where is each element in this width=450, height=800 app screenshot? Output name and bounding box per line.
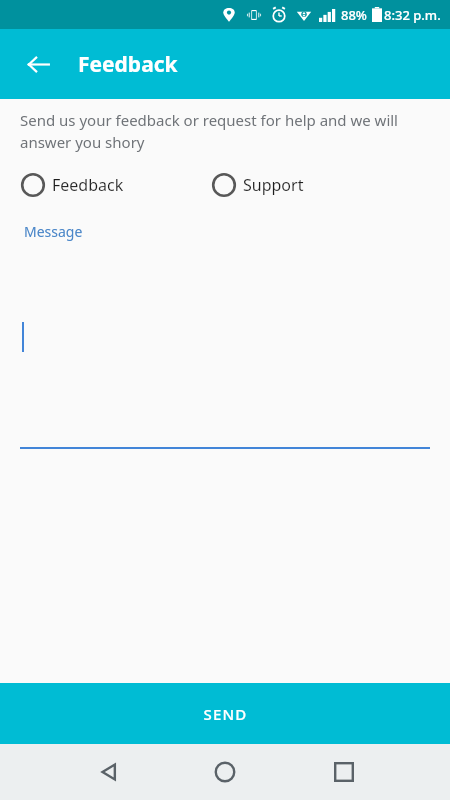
staticText: Support [243,174,304,196]
button[interactable]: SEND [0,683,450,744]
staticText: Send us your feedback or request for hel… [20,110,432,153]
button[interactable]: Feedback [21,169,124,201]
button[interactable]: Back [86,748,134,796]
staticText: 88% [341,6,367,24]
staticText: Feedback [52,174,124,196]
staticText: 8:32 p.m. [384,6,441,24]
button[interactable]: Home [201,748,249,796]
staticText: Message [24,222,83,241]
staticText: Feedback [78,50,178,79]
button[interactable]: Back [18,44,58,84]
button[interactable]: Recents [320,748,368,796]
button[interactable]: Support [212,169,304,201]
staticText: SEND [203,704,248,724]
